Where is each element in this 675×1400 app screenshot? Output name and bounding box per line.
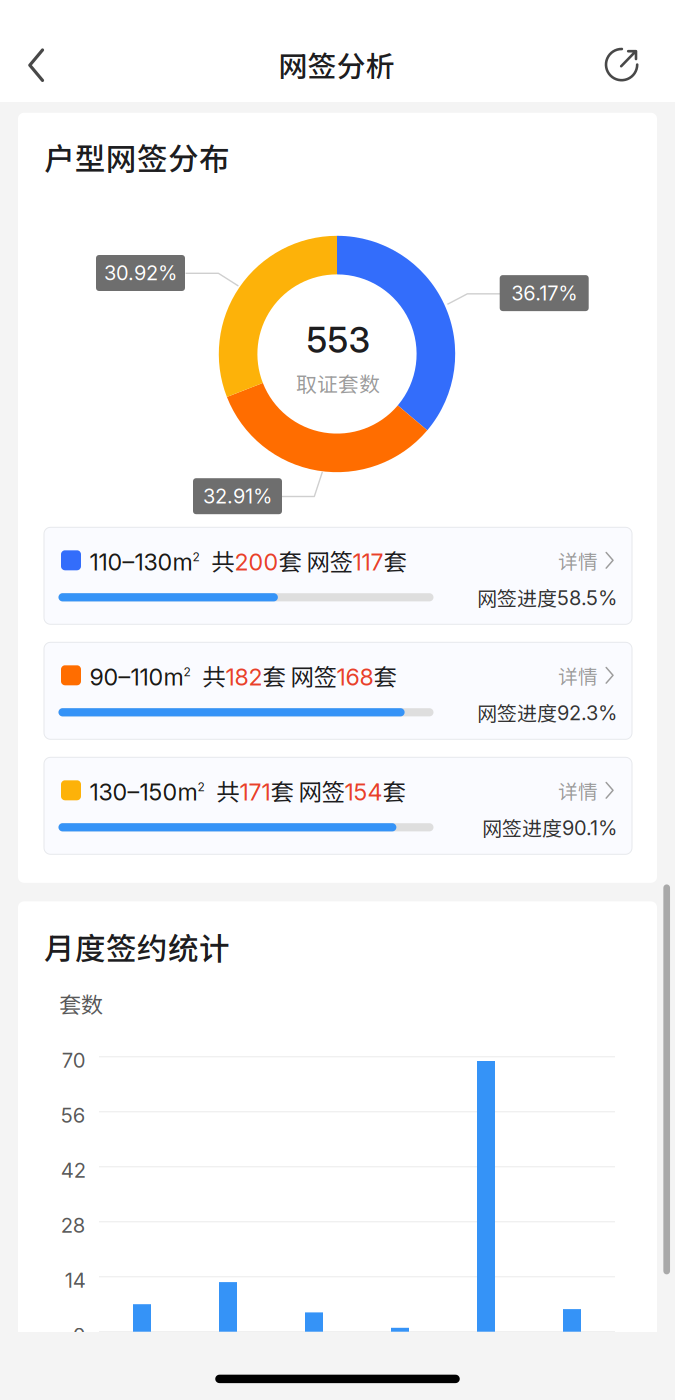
staticText: 28 — [61, 1213, 86, 1238]
staticText: 网签分析 — [278, 44, 394, 85]
button[interactable]: Share — [596, 39, 648, 91]
staticText: 90–110m2 共182套 网签168套 — [90, 659, 397, 692]
staticText: 42 — [61, 1158, 86, 1183]
staticText: 套数 — [59, 988, 103, 1019]
button[interactable]: Back — [8, 37, 64, 93]
staticText: 网签进度90.1% — [482, 813, 617, 842]
staticText: 130–150m2 共171套 网签154套 — [90, 774, 406, 807]
staticText: 网签进度58.5% — [477, 583, 617, 612]
staticText: 月度签约统计 — [44, 924, 230, 968]
staticText: 详情 — [558, 546, 598, 574]
staticText: 0 — [73, 1323, 86, 1348]
staticText: 553 — [306, 319, 370, 361]
button[interactable]: 110–130m2 共200套 网签117套 — [44, 527, 632, 624]
button[interactable]: 130–150m2 共171套 网签154套 — [44, 757, 632, 854]
staticText: 110–130m2 共200套 网签117套 — [90, 544, 407, 577]
staticText: 取证套数 — [296, 368, 380, 398]
staticText: 14 — [65, 1268, 86, 1293]
staticText: 56 — [61, 1103, 86, 1128]
staticText: 32.91% — [203, 484, 272, 508]
staticText: 详情 — [558, 661, 598, 689]
staticText: 网签进度92.3% — [477, 698, 617, 727]
staticText: 36.17% — [511, 281, 577, 305]
staticText: 户型网签分布 — [44, 135, 230, 179]
staticText: 70 — [62, 1048, 86, 1073]
staticText: 详情 — [558, 776, 598, 804]
button[interactable]: 90–110m2 共182套 网签168套 — [44, 642, 632, 739]
staticText: 30.92% — [104, 261, 177, 285]
